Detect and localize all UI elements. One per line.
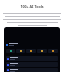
button[interactable] (37, 49, 47, 53)
button[interactable]: App icon (6, 42, 58, 47)
button[interactable] (48, 49, 58, 53)
button[interactable] (26, 49, 36, 53)
button[interactable] (6, 68, 58, 72)
staticText: 100+ AI Tools (20, 4, 44, 9)
button[interactable] (6, 62, 58, 67)
button[interactable] (6, 56, 58, 61)
button[interactable] (16, 49, 25, 53)
button[interactable] (6, 49, 15, 53)
